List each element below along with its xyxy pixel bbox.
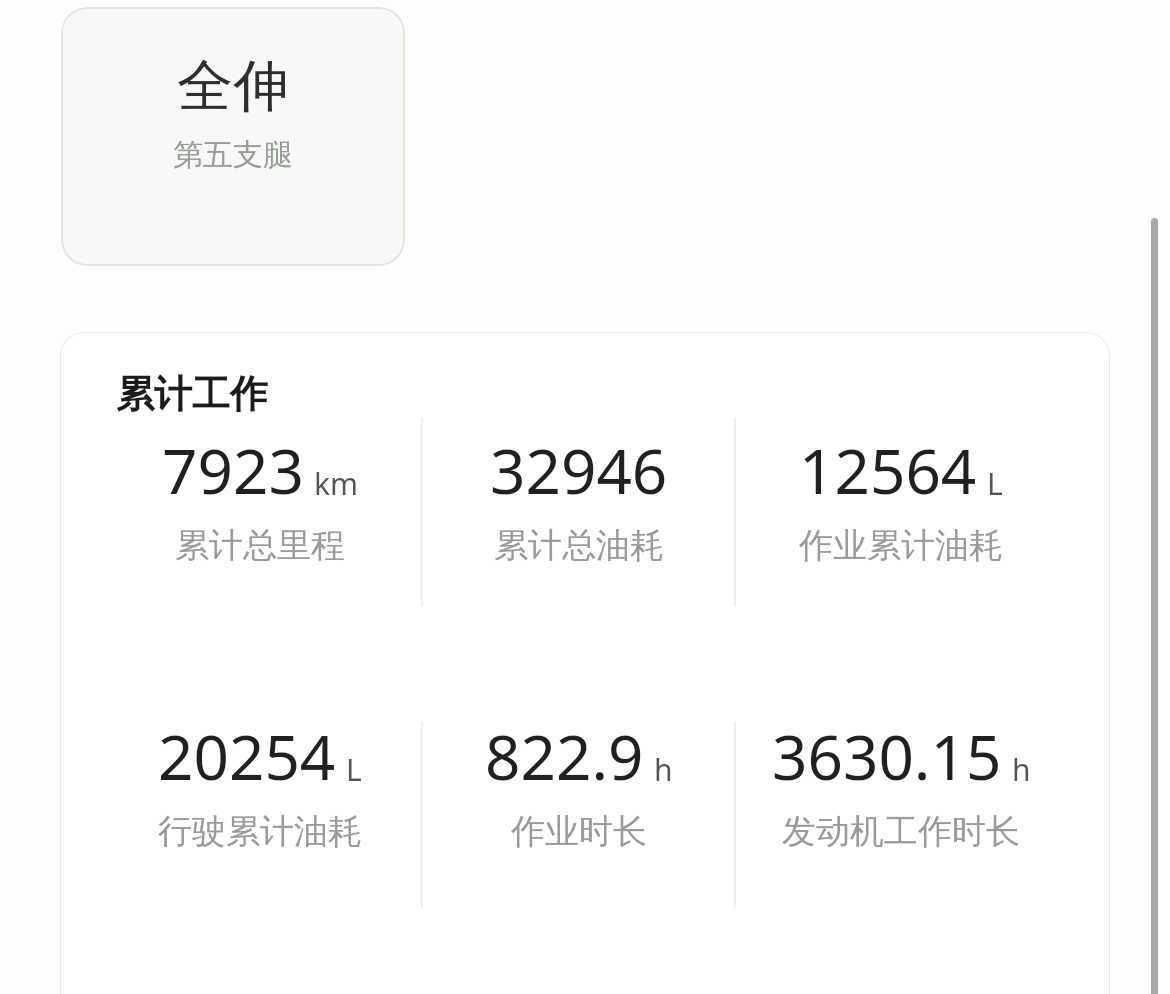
staticText: 20254 xyxy=(158,714,336,798)
staticText: 12564 xyxy=(799,428,977,512)
staticText: 作业时长 xyxy=(511,810,647,853)
staticText: 累计工作 xyxy=(116,370,268,418)
staticText: 全伸 xyxy=(177,51,289,122)
button[interactable]: 20254 xyxy=(100,714,420,853)
button[interactable]: 全伸 xyxy=(61,7,405,266)
staticText: 822.9 xyxy=(485,714,644,798)
button[interactable]: 12564 xyxy=(736,428,1066,567)
staticText: 第五支腿 xyxy=(173,136,293,174)
button[interactable]: 32946 xyxy=(423,428,734,567)
staticText: h xyxy=(1012,749,1031,790)
staticText: L xyxy=(987,463,1003,504)
staticText: 7923 xyxy=(162,428,304,512)
button[interactable]: 7923 xyxy=(100,428,420,567)
button[interactable]: 3630.15 xyxy=(736,714,1066,853)
staticText: L xyxy=(346,749,362,790)
staticText: 发动机工作时长 xyxy=(782,810,1020,853)
staticText: 累计总油耗 xyxy=(494,524,664,567)
button[interactable]: 822.9 xyxy=(423,714,734,853)
staticText: 作业累计油耗 xyxy=(799,524,1003,567)
staticText: h xyxy=(654,749,673,790)
staticText: 累计总里程 xyxy=(175,524,345,567)
staticText: 3630.15 xyxy=(772,714,1002,798)
staticText: 行驶累计油耗 xyxy=(158,810,362,853)
staticText: 32946 xyxy=(490,428,668,512)
staticText: km xyxy=(314,463,359,504)
